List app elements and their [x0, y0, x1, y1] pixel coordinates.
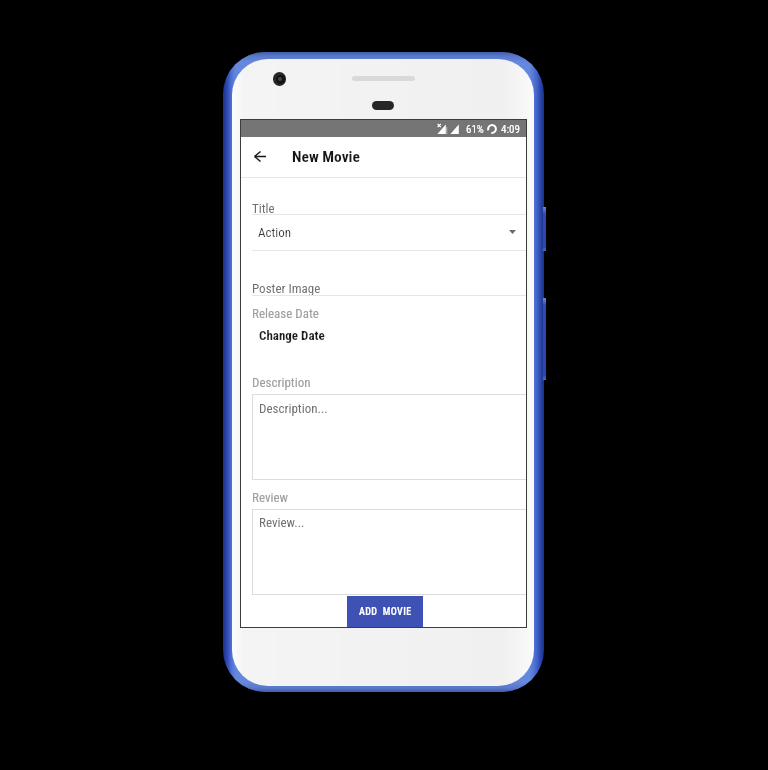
button[interactable]: Change Date [252, 321, 329, 347]
button[interactable]: Back [246, 142, 274, 170]
staticText: 61% [466, 123, 484, 136]
staticText: Review... [259, 515, 305, 530]
staticText: ADD MOVIE [359, 606, 412, 618]
button[interactable]: ADD MOVIE [347, 596, 423, 627]
button[interactable]: Review... [252, 509, 526, 595]
staticText: Change Date [259, 328, 325, 343]
staticText: Poster Image [252, 281, 321, 296]
staticText: Description... [259, 401, 328, 416]
staticText: Title [252, 201, 275, 216]
staticText: Review [252, 490, 288, 505]
button[interactable]: Genre dropdown, Action [252, 216, 526, 249]
staticText: 4:09 [501, 123, 520, 136]
staticText: Description [252, 375, 311, 390]
staticText: Action [258, 225, 292, 240]
staticText: New Movie [292, 148, 360, 166]
staticText: Release Date [252, 306, 319, 321]
button[interactable]: Description... [252, 394, 526, 480]
